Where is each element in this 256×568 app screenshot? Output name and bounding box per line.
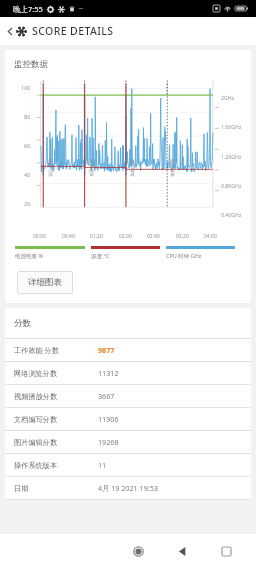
button[interactable]: 视频播放分数	[5, 384, 251, 407]
staticText: 02:40	[147, 233, 160, 240]
staticText: 11312	[98, 368, 119, 378]
button[interactable]: 图片编辑分数	[5, 430, 251, 453]
staticText: 温度 °C	[91, 252, 110, 260]
staticText: 分数	[14, 318, 31, 329]
staticText: 网页浏览	[88, 159, 94, 177]
button[interactable]: Back	[0, 17, 122, 45]
staticText: 00:00	[33, 233, 46, 240]
staticText: CPU 时钟 GHz	[166, 252, 202, 260]
button[interactable]: Back	[166, 535, 198, 567]
staticText: 11906	[98, 414, 119, 424]
button[interactable]: Recents	[210, 535, 242, 567]
staticText: ··	[79, 4, 83, 14]
button[interactable]: 文档编写分数	[5, 407, 251, 430]
staticText: 2GHz	[221, 94, 235, 101]
staticText: 日期	[14, 484, 29, 493]
staticText: 文档编写	[129, 159, 135, 177]
button[interactable]: 工作效能 分数	[5, 338, 251, 361]
staticText: 03:20	[176, 233, 189, 240]
staticText: 40	[24, 171, 31, 178]
staticText: 晚上7:55	[13, 4, 43, 14]
staticText: 11	[98, 460, 107, 470]
staticText: 电池电量 %	[15, 252, 44, 260]
button[interactable]: 操作系统版本	[5, 453, 251, 476]
staticText: 100	[21, 84, 31, 91]
button[interactable]: Home	[122, 535, 154, 567]
staticText: 0.40GHz	[221, 211, 242, 218]
staticText: 00:40	[62, 233, 75, 240]
staticText: 图片编辑	[169, 159, 175, 177]
button[interactable]: 日期	[5, 476, 251, 500]
staticText: 网络浏览分数	[14, 369, 58, 378]
staticText: 60	[24, 142, 31, 149]
other: Back	[4, 25, 16, 37]
staticText: 4月 19 2021 19:53	[98, 483, 158, 493]
button[interactable]: 详细图表	[17, 271, 73, 294]
staticText: SCORE DETAILS	[32, 24, 114, 38]
staticText: 80	[24, 113, 31, 120]
staticText: 04:00	[204, 233, 217, 240]
staticText: 9877	[98, 345, 115, 355]
button[interactable]: 网络浏览分数	[5, 361, 251, 384]
staticText: 操作系统版本	[14, 461, 58, 470]
staticText: 1.20GHz	[221, 153, 242, 160]
staticText: 视频播放分数	[14, 392, 58, 401]
staticText: 01:20	[90, 233, 103, 240]
staticText: 1.60GHz	[221, 123, 242, 130]
staticText: 详细图表	[28, 277, 62, 288]
staticText: 19268	[98, 437, 119, 447]
staticText: 工作效能 分数	[14, 345, 59, 355]
staticText: 文档编写分数	[14, 415, 58, 424]
staticText: 20	[24, 200, 31, 207]
staticText: 0.80GHz	[221, 182, 242, 189]
staticText: 应用启动	[47, 159, 53, 177]
staticText: 监控数据	[14, 59, 48, 70]
staticText: 图片编辑分数	[14, 438, 58, 447]
staticText: 3667	[98, 391, 115, 401]
staticText: 02:00	[119, 233, 132, 240]
